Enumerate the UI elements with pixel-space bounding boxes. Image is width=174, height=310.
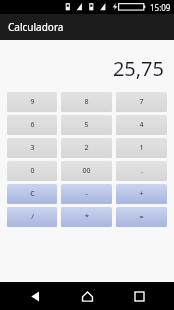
staticText: 4 (139, 120, 144, 130)
staticText: 8 (84, 97, 89, 107)
staticText: C (30, 189, 35, 199)
staticText: 25,75 (112, 55, 164, 82)
button[interactable]: 9 (7, 92, 57, 112)
staticText: 9 (30, 97, 35, 107)
button[interactable]: 2 (61, 138, 112, 158)
button[interactable]: - (61, 184, 112, 204)
staticText: 7 (139, 97, 144, 107)
button[interactable]: 5 (61, 115, 112, 135)
staticText: - (85, 189, 88, 199)
button[interactable]: 00 (61, 161, 112, 181)
button[interactable]: = (116, 207, 167, 227)
button[interactable]: Home (70, 282, 104, 310)
staticText: 2 (84, 143, 89, 153)
button[interactable]: + (116, 184, 167, 204)
button[interactable]: C (7, 184, 57, 204)
staticText: Calculadora (8, 20, 64, 34)
staticText: 0 (30, 166, 35, 176)
button[interactable]: 8 (61, 92, 112, 112)
button[interactable]: 7 (116, 92, 167, 112)
staticText: * (85, 212, 89, 222)
staticText: 15:09 (150, 2, 171, 13)
staticText: = (139, 212, 144, 222)
button[interactable]: 6 (7, 115, 57, 135)
button[interactable]: Back (18, 282, 52, 310)
button[interactable]: 1 (116, 138, 167, 158)
staticText: / (31, 212, 34, 222)
button[interactable]: / (7, 207, 57, 227)
button[interactable]: 4 (116, 115, 167, 135)
staticText: . (141, 166, 143, 176)
button[interactable]: 0 (7, 161, 57, 181)
staticText: + (139, 189, 144, 199)
button[interactable]: 3 (7, 138, 57, 158)
staticText: 3 (30, 143, 35, 153)
button[interactable]: Recent apps (122, 282, 156, 310)
button[interactable]: * (61, 207, 112, 227)
staticText: 00 (82, 166, 91, 176)
staticText: 1 (139, 143, 144, 153)
staticText: 6 (30, 120, 35, 130)
staticText: 5 (84, 120, 89, 130)
button[interactable]: . (116, 161, 167, 181)
